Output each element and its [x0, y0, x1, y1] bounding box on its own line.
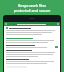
staticText: Keeps work files protected and secure	[3, 3, 61, 13]
button[interactable]: Action	[55, 46, 58, 48]
button[interactable]: Menu	[4, 22, 60, 26]
